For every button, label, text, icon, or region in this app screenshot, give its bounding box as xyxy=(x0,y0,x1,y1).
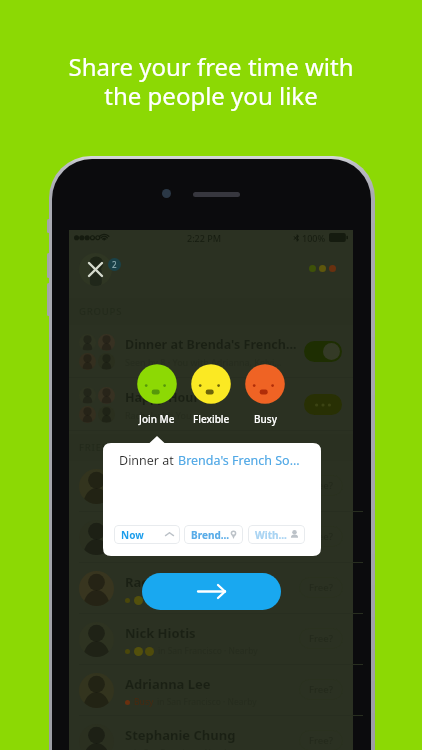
button[interactable]: Availability xyxy=(309,265,336,272)
button[interactable]: Nick Hiotis xyxy=(69,614,353,665)
staticText: Brend... xyxy=(191,528,230,542)
button[interactable]: Toggle notifications xyxy=(304,341,342,362)
button[interactable]: Adrianna Lee xyxy=(69,665,353,716)
button[interactable]: Now xyxy=(114,525,180,544)
staticText: Free? xyxy=(309,530,333,543)
staticText: Stephanie Chung xyxy=(125,726,236,744)
staticText: Dinner at xyxy=(119,452,178,469)
button[interactable]: Happy Hour xyxy=(69,378,353,431)
staticText: Rachel Goldman xyxy=(125,573,231,591)
button[interactable]: Send xyxy=(142,573,281,610)
button[interactable]: Rachel Goldman xyxy=(69,563,353,614)
button[interactable]: Kelvin Zhou xyxy=(69,512,353,563)
staticText: Rachel with You xyxy=(125,409,192,421)
staticText: in San Francisco · Nearby xyxy=(158,594,258,606)
staticText: Adrianna Lee xyxy=(125,675,211,693)
staticText: Free? xyxy=(309,479,333,492)
button[interactable]: Free? xyxy=(299,526,343,547)
staticText: Nick Hiotis xyxy=(125,624,196,642)
button[interactable]: Brend... xyxy=(184,525,243,544)
staticText: Busy xyxy=(134,696,154,708)
staticText: Brenda's French So... xyxy=(178,452,300,469)
button[interactable]: Close xyxy=(79,253,112,286)
button[interactable]: Stephanie Chung xyxy=(69,716,353,750)
button[interactable]: More options xyxy=(304,394,342,415)
staticText: in San Francisco · Nearby xyxy=(134,543,234,555)
staticText: Now xyxy=(121,528,144,542)
staticText: 100% xyxy=(302,232,326,244)
staticText: Dinner at Brenda's French... xyxy=(125,336,297,353)
button[interactable]: Dinner at Brenda's French... xyxy=(69,325,353,378)
button[interactable]: Busy xyxy=(245,364,285,426)
button[interactable]: Join Me xyxy=(137,364,177,426)
staticText: 2 xyxy=(112,259,117,270)
staticText: Kelvin Zhou xyxy=(125,522,201,540)
staticText: Busy xyxy=(254,412,277,426)
staticText: With... xyxy=(255,528,287,542)
staticText: Join Me xyxy=(139,412,175,426)
button[interactable]: Free? xyxy=(299,475,343,496)
staticText: Flexible xyxy=(193,412,230,426)
staticText: Share your free time with the people you… xyxy=(0,50,422,112)
staticText: 2:22 PM xyxy=(187,232,221,244)
button[interactable]: Brenda Wallace xyxy=(69,461,353,512)
staticText: Seen by 8 · You with Adrianna, Kelvi... xyxy=(125,356,282,368)
staticText: Happy Hour xyxy=(125,389,200,406)
staticText: FRIENDS xyxy=(79,441,124,454)
button[interactable]: Flexible xyxy=(191,364,231,426)
button[interactable]: With... xyxy=(248,525,305,544)
